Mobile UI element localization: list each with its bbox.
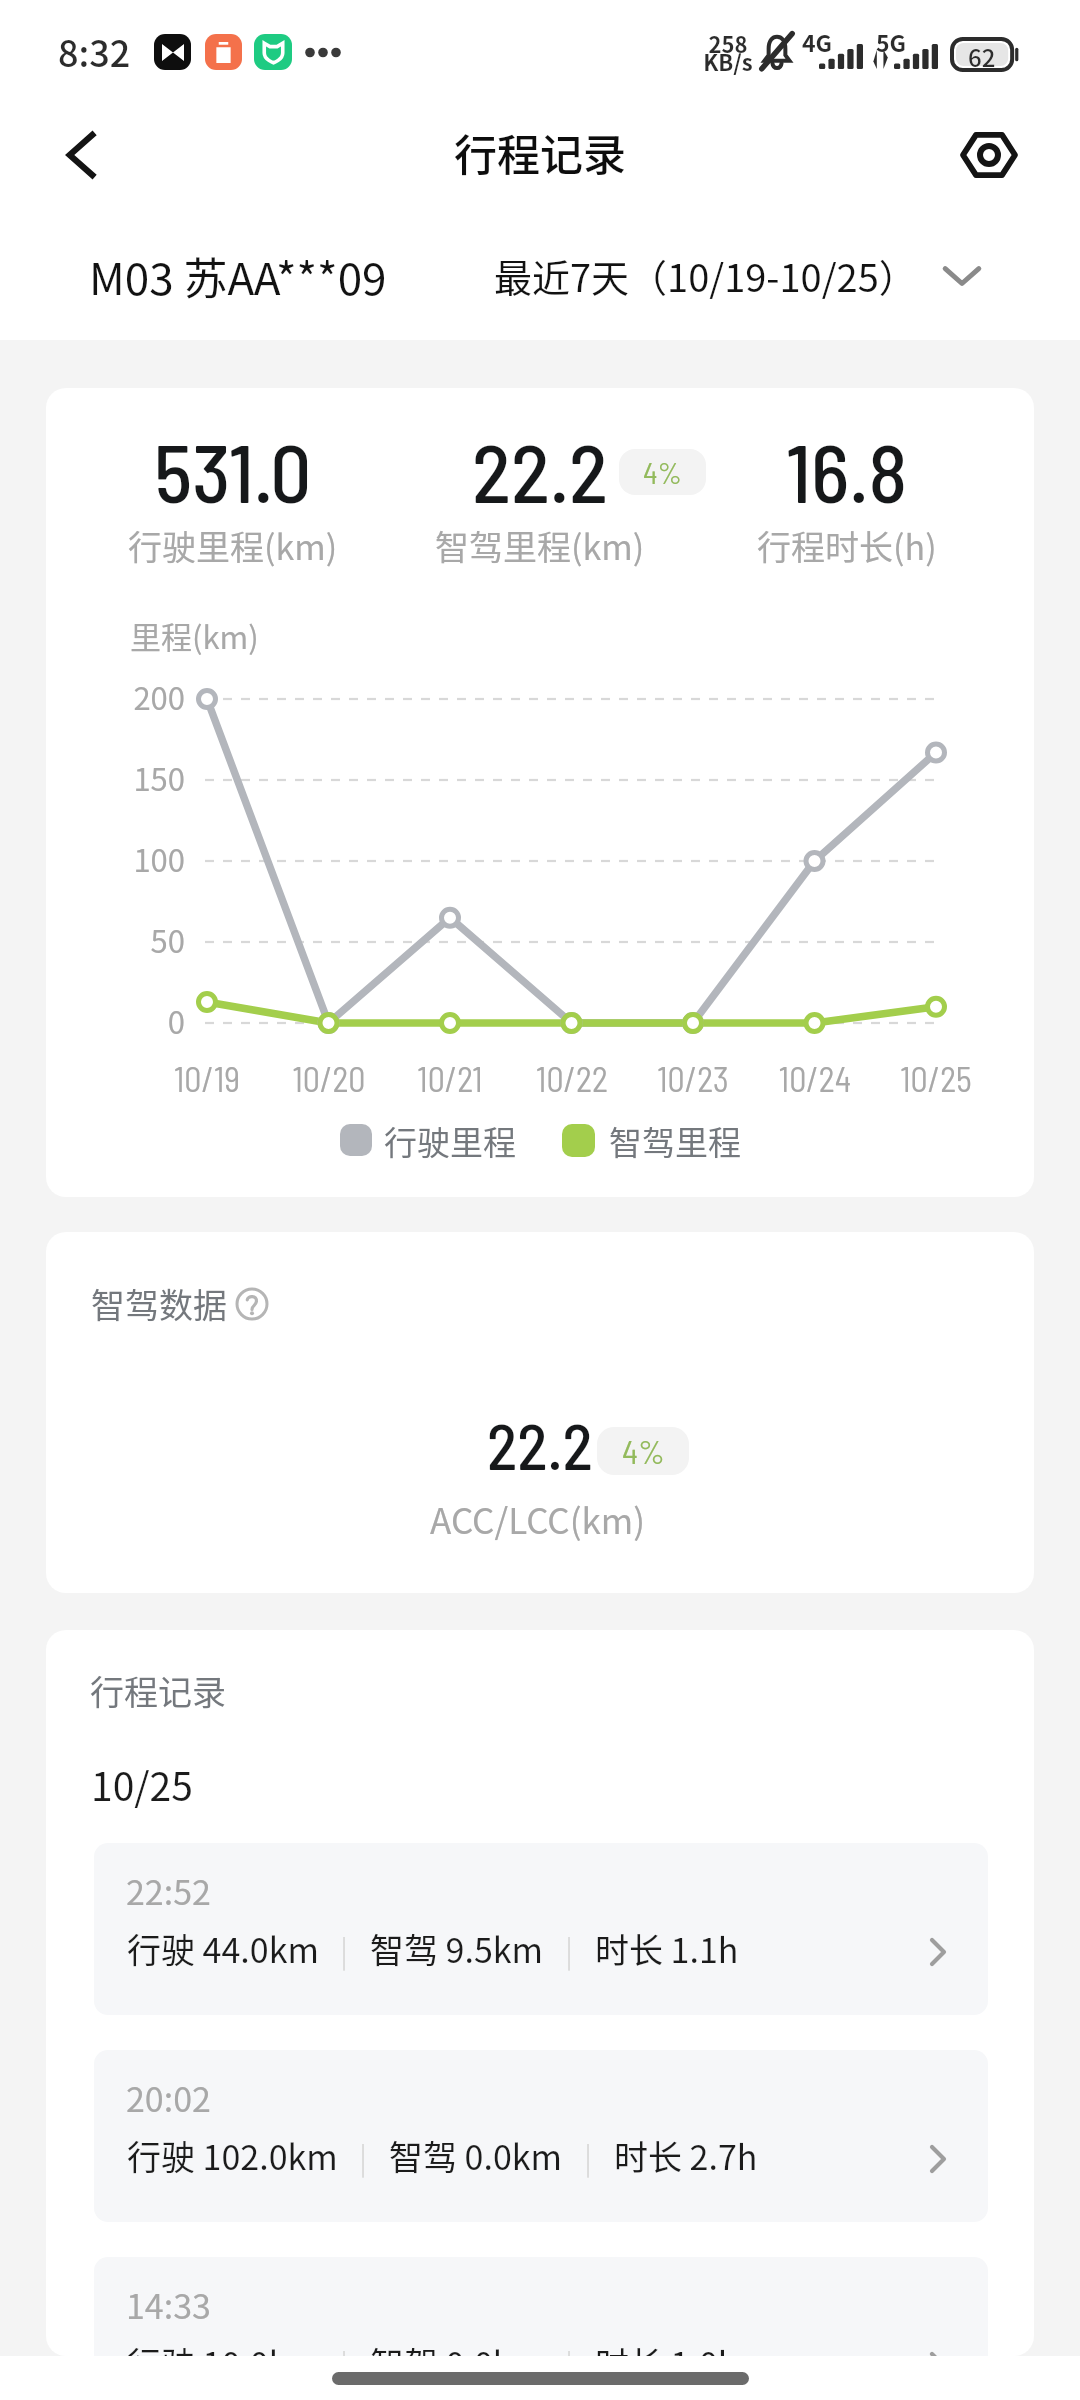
staticText: 10/19 (147, 1058, 267, 1099)
staticText: 200 (85, 674, 185, 719)
staticText: 10/24 (755, 1058, 875, 1099)
staticText: 258 (700, 27, 756, 59)
staticText: | (565, 2341, 574, 2356)
staticText: | (340, 2341, 349, 2356)
button[interactable]: 最近7天（10/19-10/25） (494, 232, 994, 318)
button[interactable]: 智驾数据 (91, 1279, 269, 1328)
button[interactable]: 14:33 (94, 2257, 988, 2356)
staticText: 22.2 (472, 422, 608, 519)
staticText: 时长 1.1h (595, 1924, 739, 1973)
staticText: 100 (85, 836, 185, 881)
staticText: 20:02 (126, 2073, 211, 2122)
staticText: 10/20 (269, 1058, 389, 1099)
staticText: 行驶 102.0km (127, 2131, 338, 2180)
button[interactable]: 22:52 (94, 1843, 988, 2015)
staticText: 行驶 10.0km (127, 2338, 319, 2356)
staticText: 5G (876, 25, 907, 58)
staticText: 4% (622, 1431, 665, 1471)
staticText: KB/s (700, 45, 756, 77)
staticText: | (340, 1927, 349, 1970)
staticText: 行程记录 (454, 121, 626, 183)
staticText: ACC/LCC(km) (430, 1493, 646, 1544)
staticText: 智驾 0.0km (370, 2338, 544, 2356)
staticText: 智驾里程(km) (435, 521, 645, 570)
staticText: | (565, 1927, 574, 1970)
staticText: 50 (85, 917, 185, 962)
staticText: 智驾 0.0km (389, 2131, 563, 2180)
staticText: 行程时长(h) (757, 521, 937, 570)
staticText: 智驾数据 (91, 1279, 227, 1328)
staticText: 10/25 (876, 1058, 996, 1099)
staticText: 14:33 (126, 2280, 211, 2329)
staticText: 10/21 (390, 1058, 510, 1099)
staticText: M03 苏AA***09 (89, 244, 387, 308)
staticText: 里程(km) (130, 613, 259, 658)
staticText: | (584, 2134, 593, 2177)
staticText: 10/25 (91, 1756, 193, 1812)
staticText: 最近7天（10/19-10/25） (494, 248, 917, 303)
staticText: | (359, 2134, 368, 2177)
button[interactable]: Back (34, 108, 128, 202)
staticText: 0 (85, 998, 185, 1043)
staticText: 150 (85, 755, 185, 800)
staticText: 10/23 (633, 1058, 753, 1099)
staticText: 行驶里程(km) (128, 521, 338, 570)
staticText: 22.2 (487, 1407, 593, 1483)
staticText: 531.0 (154, 422, 312, 519)
staticText: 10/22 (512, 1058, 632, 1099)
button[interactable]: Settings (942, 108, 1036, 202)
staticText: 时长 1.0h (595, 2338, 739, 2356)
staticText: 行驶里程 (384, 1117, 516, 1165)
staticText: 16.8 (786, 422, 908, 519)
staticText: 22:52 (126, 1866, 211, 1915)
staticText: 智驾里程 (609, 1117, 741, 1165)
staticText: 智驾 9.5km (370, 1924, 544, 1973)
staticText: 8:32 (58, 25, 131, 77)
staticText: 62 (968, 39, 996, 70)
staticText: 行程记录 (90, 1666, 226, 1715)
staticText: 时长 2.7h (614, 2131, 758, 2180)
staticText: 4G (802, 25, 833, 58)
button[interactable]: 20:02 (94, 2050, 988, 2222)
staticText: 4% (643, 454, 682, 490)
staticText: 行驶 44.0km (127, 1924, 319, 1973)
